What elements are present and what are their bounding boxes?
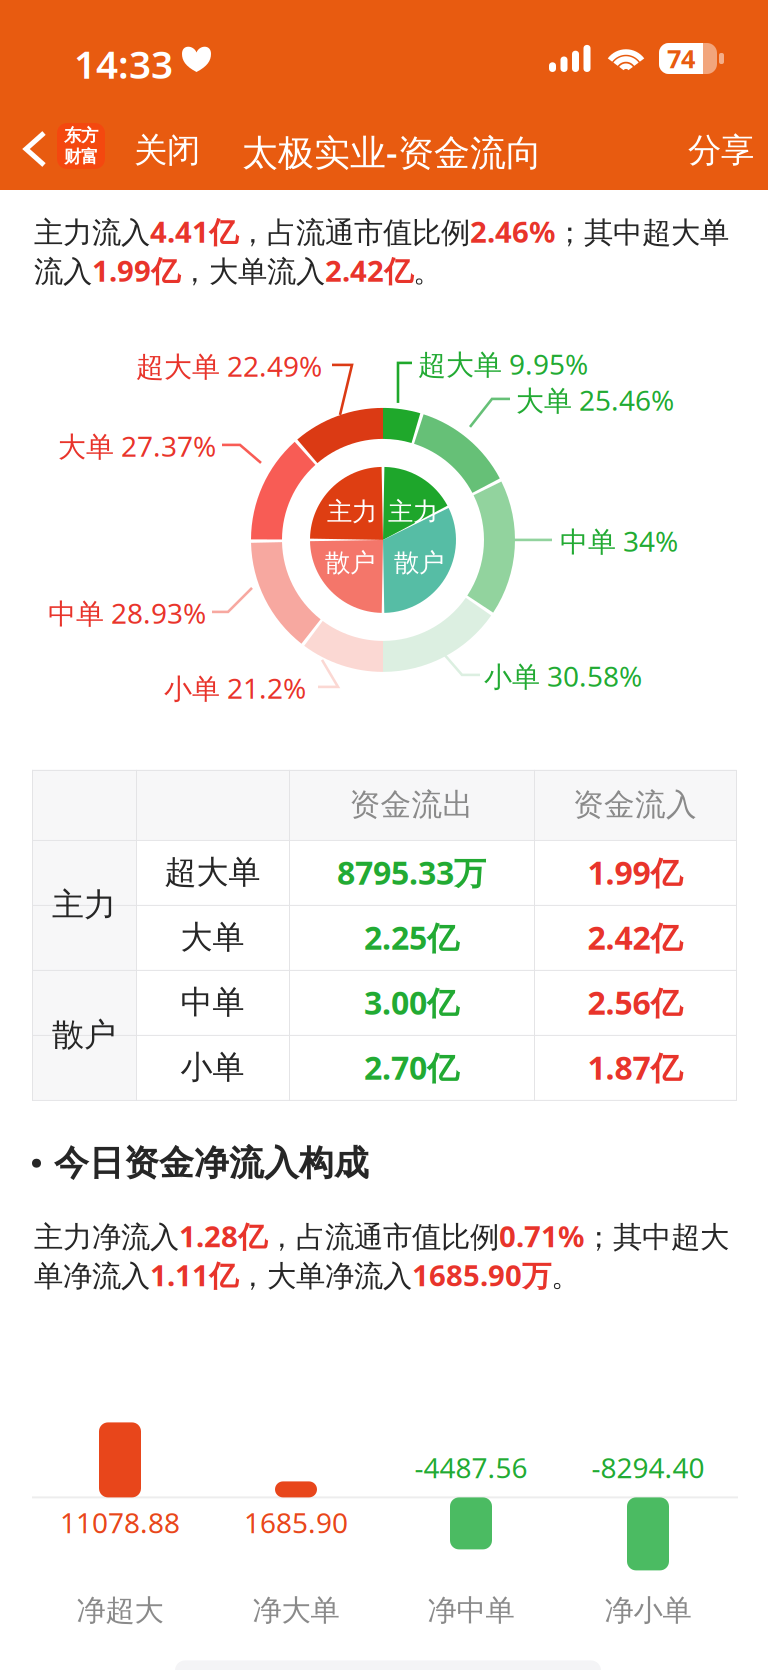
staticText: 散户	[394, 547, 444, 578]
staticText: 净大单	[252, 1592, 339, 1628]
staticText: -8294.40	[591, 1449, 704, 1486]
staticText: 中单 34%	[560, 522, 678, 559]
staticText: 2.25亿	[364, 916, 459, 959]
staticText: 散户	[52, 1015, 116, 1055]
staticText: 大单 25.46%	[516, 381, 674, 418]
staticText: 财富	[64, 146, 98, 167]
staticText: 净中单	[427, 1592, 514, 1628]
staticText: 74	[667, 42, 695, 75]
staticText: 大单	[180, 918, 244, 957]
button[interactable]: 关闭	[120, 118, 214, 183]
staticText: 主力	[52, 885, 116, 925]
button[interactable]: 分享	[674, 118, 768, 183]
staticText: 2.70亿	[364, 1046, 459, 1089]
staticText: 超大单 22.49%	[136, 347, 322, 384]
staticText: 资金流入	[573, 786, 697, 824]
staticText: 关闭	[134, 130, 200, 171]
staticText: 净超大	[76, 1592, 163, 1628]
staticText: 主力流入4.41亿，占流通市值比例2.46%；其中超大单流入1.99亿，大单流入…	[34, 212, 729, 290]
staticText: 中单 28.93%	[48, 594, 206, 631]
staticText: 2.42亿	[587, 916, 682, 959]
staticText: 1.99亿	[587, 851, 682, 894]
staticText: 小单 21.2%	[164, 669, 306, 706]
staticText: 超大单 9.95%	[418, 345, 588, 382]
staticText: 2.56亿	[587, 981, 682, 1024]
staticText: 资金流出	[349, 786, 473, 824]
staticText: 大单 27.37%	[58, 427, 216, 464]
staticText: 1685.90	[244, 1504, 348, 1541]
staticText: 超大单	[164, 853, 260, 892]
staticText: 主力净流入1.28亿，占流通市值比例0.71%；其中超大单净流入1.11亿，大单…	[34, 1216, 729, 1294]
staticText: 14:33	[74, 38, 173, 89]
staticText: -4487.56	[414, 1449, 527, 1486]
staticText: 东方	[64, 125, 98, 146]
staticText: 3.00亿	[364, 981, 459, 1024]
staticText: 8795.33万	[337, 851, 486, 894]
staticText: 11078.88	[60, 1504, 180, 1541]
staticText: 小单	[180, 1048, 244, 1087]
staticText: 主力	[388, 496, 438, 527]
staticText: 净小单	[604, 1592, 691, 1628]
staticText: 中单	[180, 983, 244, 1022]
staticText: 散户	[325, 547, 375, 578]
staticText: 主力	[327, 496, 377, 527]
staticText: 太极实业-资金流向	[242, 128, 542, 176]
staticText: 1.87亿	[587, 1046, 682, 1089]
button[interactable]: 返回	[8, 118, 60, 180]
staticText: 小单 30.58%	[484, 657, 642, 694]
staticText: 今日资金净流入构成	[54, 1142, 369, 1184]
staticText: 分享	[688, 130, 754, 171]
